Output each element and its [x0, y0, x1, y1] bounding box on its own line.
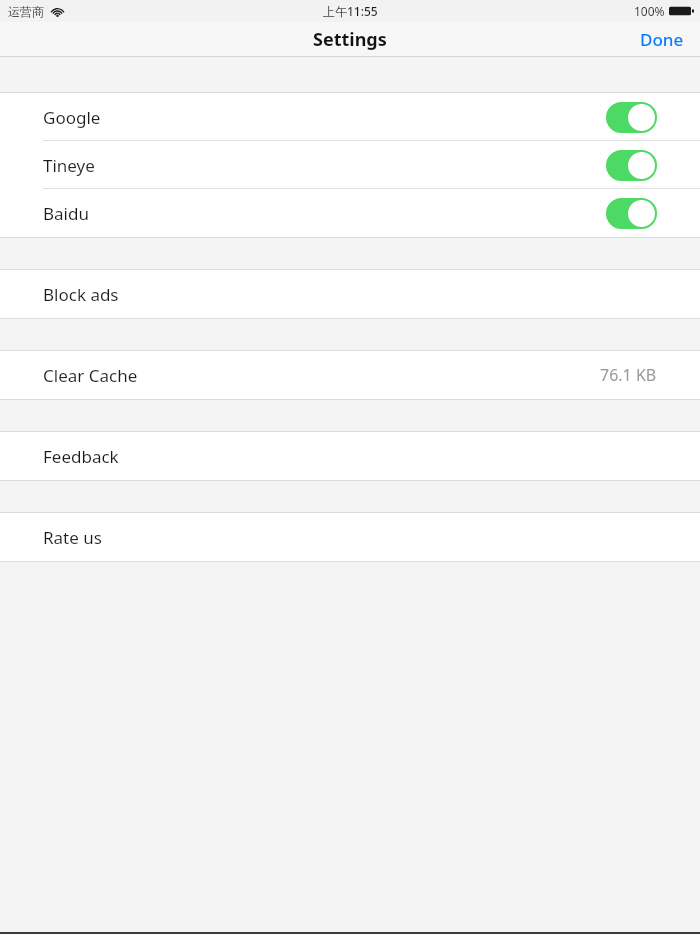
staticText: 100%	[634, 3, 665, 19]
staticText: Google	[43, 106, 101, 129]
button[interactable]: Clear Cache	[0, 351, 700, 399]
button[interactable]: Baidu	[0, 189, 700, 237]
staticText: Block ads	[43, 283, 119, 306]
staticText: 上午11:55	[323, 3, 378, 19]
button[interactable]: Toggle on	[606, 198, 657, 229]
staticText: Clear Cache	[43, 364, 138, 387]
button[interactable]: Toggle on	[606, 150, 657, 181]
button[interactable]: Google	[0, 93, 700, 141]
button[interactable]: Rate us	[0, 513, 700, 561]
button[interactable]: Block ads	[0, 270, 700, 318]
staticText: Done	[640, 28, 684, 51]
staticText: 运营商	[8, 4, 44, 19]
button[interactable]: Toggle on	[606, 102, 657, 133]
staticText: Feedback	[43, 445, 119, 468]
staticText: 76.1 KB	[600, 364, 657, 386]
staticText: Settings	[313, 27, 387, 52]
button[interactable]: Feedback	[0, 432, 700, 480]
button[interactable]: Done	[624, 22, 700, 57]
staticText: Rate us	[43, 526, 102, 549]
staticText: Tineye	[43, 154, 95, 177]
button[interactable]: Tineye	[0, 141, 700, 189]
staticText: Baidu	[43, 202, 89, 225]
